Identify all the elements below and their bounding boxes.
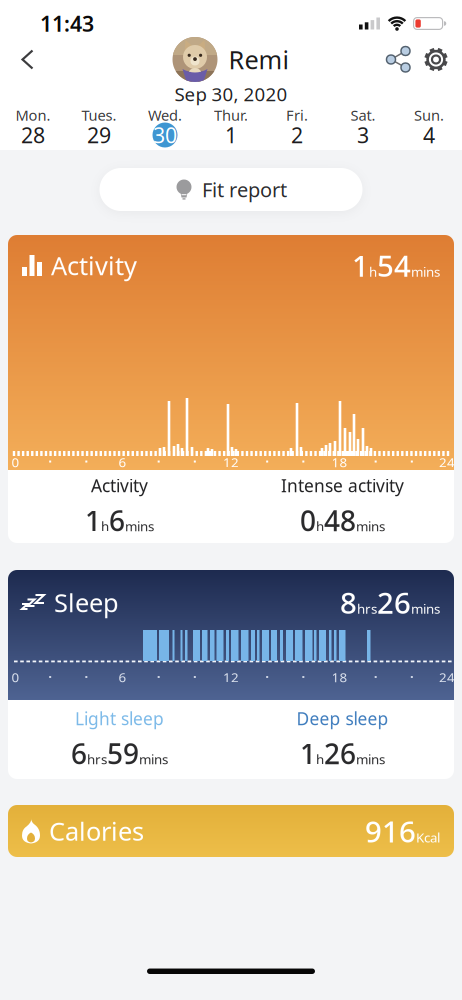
staticText: Wed. [148, 105, 182, 125]
staticText: Thur. [214, 105, 248, 125]
staticText: 24 [439, 453, 455, 471]
staticText: Deep sleep [296, 707, 388, 730]
staticText: Fit report [202, 176, 287, 203]
staticText: 3 [357, 121, 369, 149]
staticText: 29 [87, 121, 111, 149]
staticText: 2 [291, 121, 303, 149]
button[interactable]: Wed. [132, 108, 198, 148]
staticText: 6hrs59mins [71, 735, 168, 772]
staticText: Mon. [15, 105, 50, 125]
staticText: 8hrs26mins [340, 583, 440, 622]
button[interactable]: Fri. [264, 108, 330, 148]
button[interactable] [424, 47, 462, 71]
staticText: 6 [118, 453, 126, 471]
staticText: 1 [225, 121, 237, 149]
button[interactable]: Mon. [0, 108, 66, 148]
staticText: Fri. [286, 105, 308, 125]
staticText: Tues. [81, 105, 116, 125]
button[interactable]: Fit report [99, 168, 362, 211]
button[interactable]: Sun. [396, 108, 462, 148]
staticText: 1h54mins [352, 246, 440, 285]
staticText: 0 [11, 668, 19, 686]
staticText: 1h6mins [85, 502, 154, 539]
staticText: 28 [21, 121, 45, 149]
staticText: 6 [118, 668, 126, 686]
staticText: Sep 30, 2020 [174, 82, 287, 106]
staticText: 18 [331, 453, 347, 471]
staticText: 4 [423, 121, 435, 149]
staticText: Intense activity [281, 474, 404, 497]
staticText: 12 [223, 668, 239, 686]
button[interactable]: Tues. [66, 108, 132, 148]
staticText: Activity [51, 249, 137, 282]
staticText: Sleep [54, 586, 119, 619]
staticText: Light sleep [75, 707, 164, 730]
staticText: Sun. [414, 105, 444, 125]
button[interactable] [385, 46, 411, 73]
staticText: 11:43 [40, 9, 94, 38]
staticText: Activity [91, 474, 148, 497]
staticText: 18 [331, 668, 347, 686]
button[interactable] [0, 49, 35, 70]
staticText: 12 [223, 453, 239, 471]
button[interactable]: Thur. [198, 108, 264, 148]
staticText: Calories [49, 814, 144, 848]
staticText: 1h26mins [300, 735, 385, 772]
staticText: 916Kcal [365, 811, 440, 850]
staticText: Remi [228, 43, 289, 76]
staticText: 24 [439, 668, 455, 686]
button[interactable]: Sat. [330, 108, 396, 148]
staticText: 30 [153, 121, 177, 149]
staticText: Sat. [350, 105, 375, 125]
staticText: 0 [11, 453, 19, 471]
staticText: 0h48mins [300, 502, 385, 539]
